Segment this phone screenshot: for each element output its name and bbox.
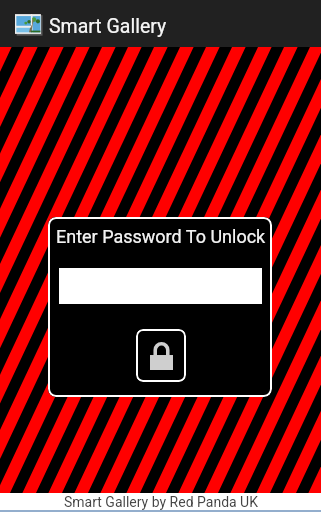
button[interactable]: Smart Gallery — [0, 0, 321, 47]
button[interactable]: Smart Gallery by Red Panda UK — [0, 493, 321, 510]
staticText: Enter Password To Unlock — [56, 226, 266, 247]
button[interactable]: Unlock — [136, 329, 186, 382]
staticText: Smart Gallery — [49, 15, 167, 38]
staticText: Smart Gallery by Red Panda UK — [64, 494, 258, 510]
